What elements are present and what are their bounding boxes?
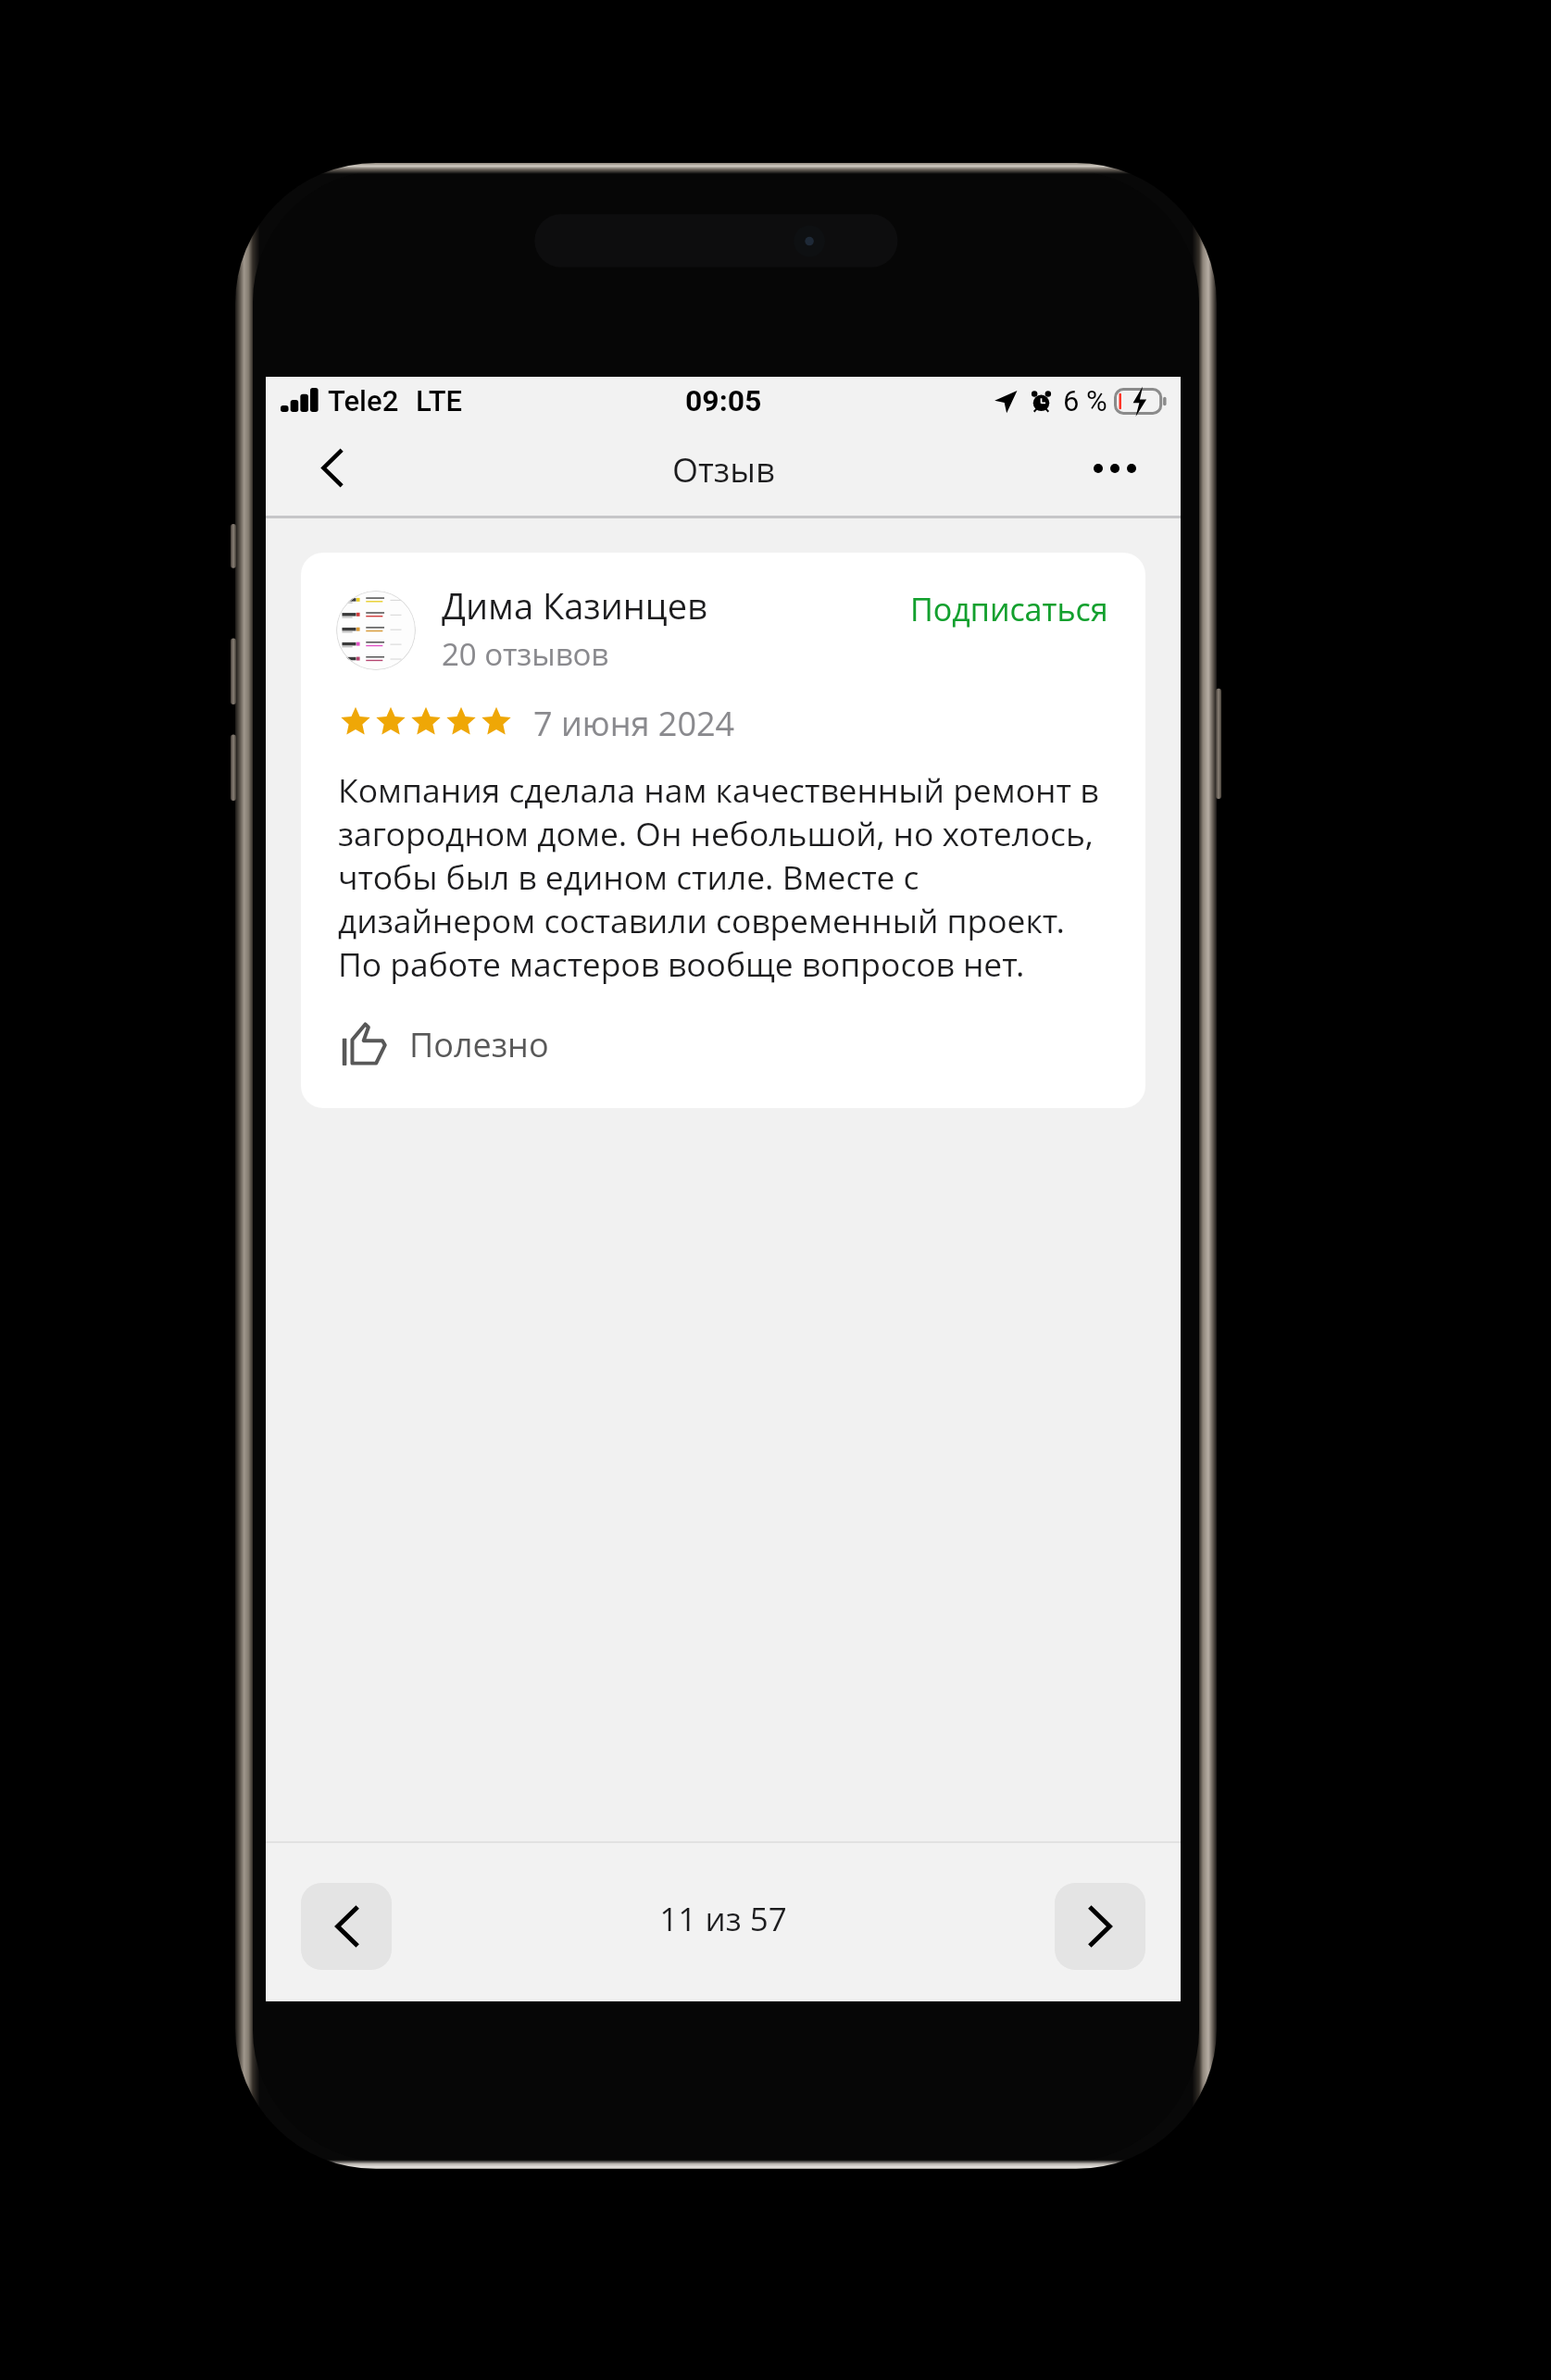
- button[interactable]: Previous review: [301, 1883, 392, 1970]
- staticText: Подписаться: [910, 588, 1108, 630]
- staticText: Tele2: [328, 384, 399, 417]
- staticText: 20 отзывов: [442, 633, 609, 675]
- staticText: 7 июня 2024: [533, 701, 735, 746]
- staticText: 6 %: [1063, 384, 1107, 417]
- button[interactable]: Подписаться: [875, 580, 1108, 638]
- button[interactable]: More options: [1069, 421, 1161, 515]
- staticText: Компания сделала нам качественный ремонт…: [338, 767, 1103, 986]
- button[interactable]: Back: [278, 425, 385, 518]
- staticText: 09:05: [685, 383, 762, 418]
- staticText: Полезно: [409, 1022, 549, 1067]
- staticText: 11 из 57: [659, 1897, 787, 1941]
- button[interactable]: Дима Казинцев: [301, 553, 1145, 1108]
- staticText: Отзыв: [672, 447, 775, 492]
- staticText: LTE: [416, 384, 463, 417]
- button[interactable]: Полезно: [332, 1008, 558, 1080]
- button[interactable]: Next review: [1055, 1883, 1145, 1970]
- staticText: Дима Казинцев: [442, 581, 707, 629]
